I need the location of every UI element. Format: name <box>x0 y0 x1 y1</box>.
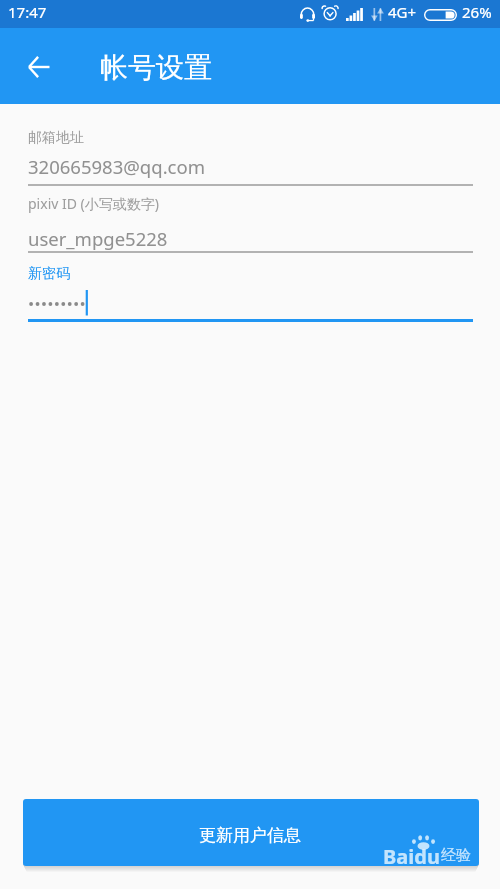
staticText: 320665983@qq.com <box>28 154 205 179</box>
button[interactable]: 邮箱地址 <box>28 124 473 185</box>
staticText: Baidu <box>383 843 440 866</box>
staticText: 新密码 <box>28 265 70 283</box>
button[interactable]: Back <box>17 45 61 89</box>
staticText: user_mpge5228 <box>28 226 168 251</box>
button[interactable]: 新密码 <box>28 261 473 322</box>
button[interactable]: pixiv ID (小写或数字) <box>28 190 473 254</box>
staticText: 4G+ <box>388 2 417 22</box>
staticText: pixiv ID (小写或数字) <box>28 194 159 213</box>
staticText: 26% <box>462 2 492 22</box>
staticText: 更新用户信息 <box>199 825 301 846</box>
staticText: 帐号设置 <box>100 50 212 85</box>
staticText: 经验 <box>441 846 471 865</box>
staticText: 邮箱地址 <box>28 129 84 147</box>
staticText: 17:47 <box>8 2 47 22</box>
button[interactable]: 更新用户信息 <box>23 799 479 866</box>
